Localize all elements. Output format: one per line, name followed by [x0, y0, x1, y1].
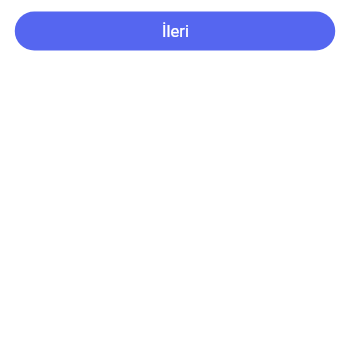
staticText: İleri	[162, 22, 189, 41]
button[interactable]: İleri	[14, 11, 336, 51]
